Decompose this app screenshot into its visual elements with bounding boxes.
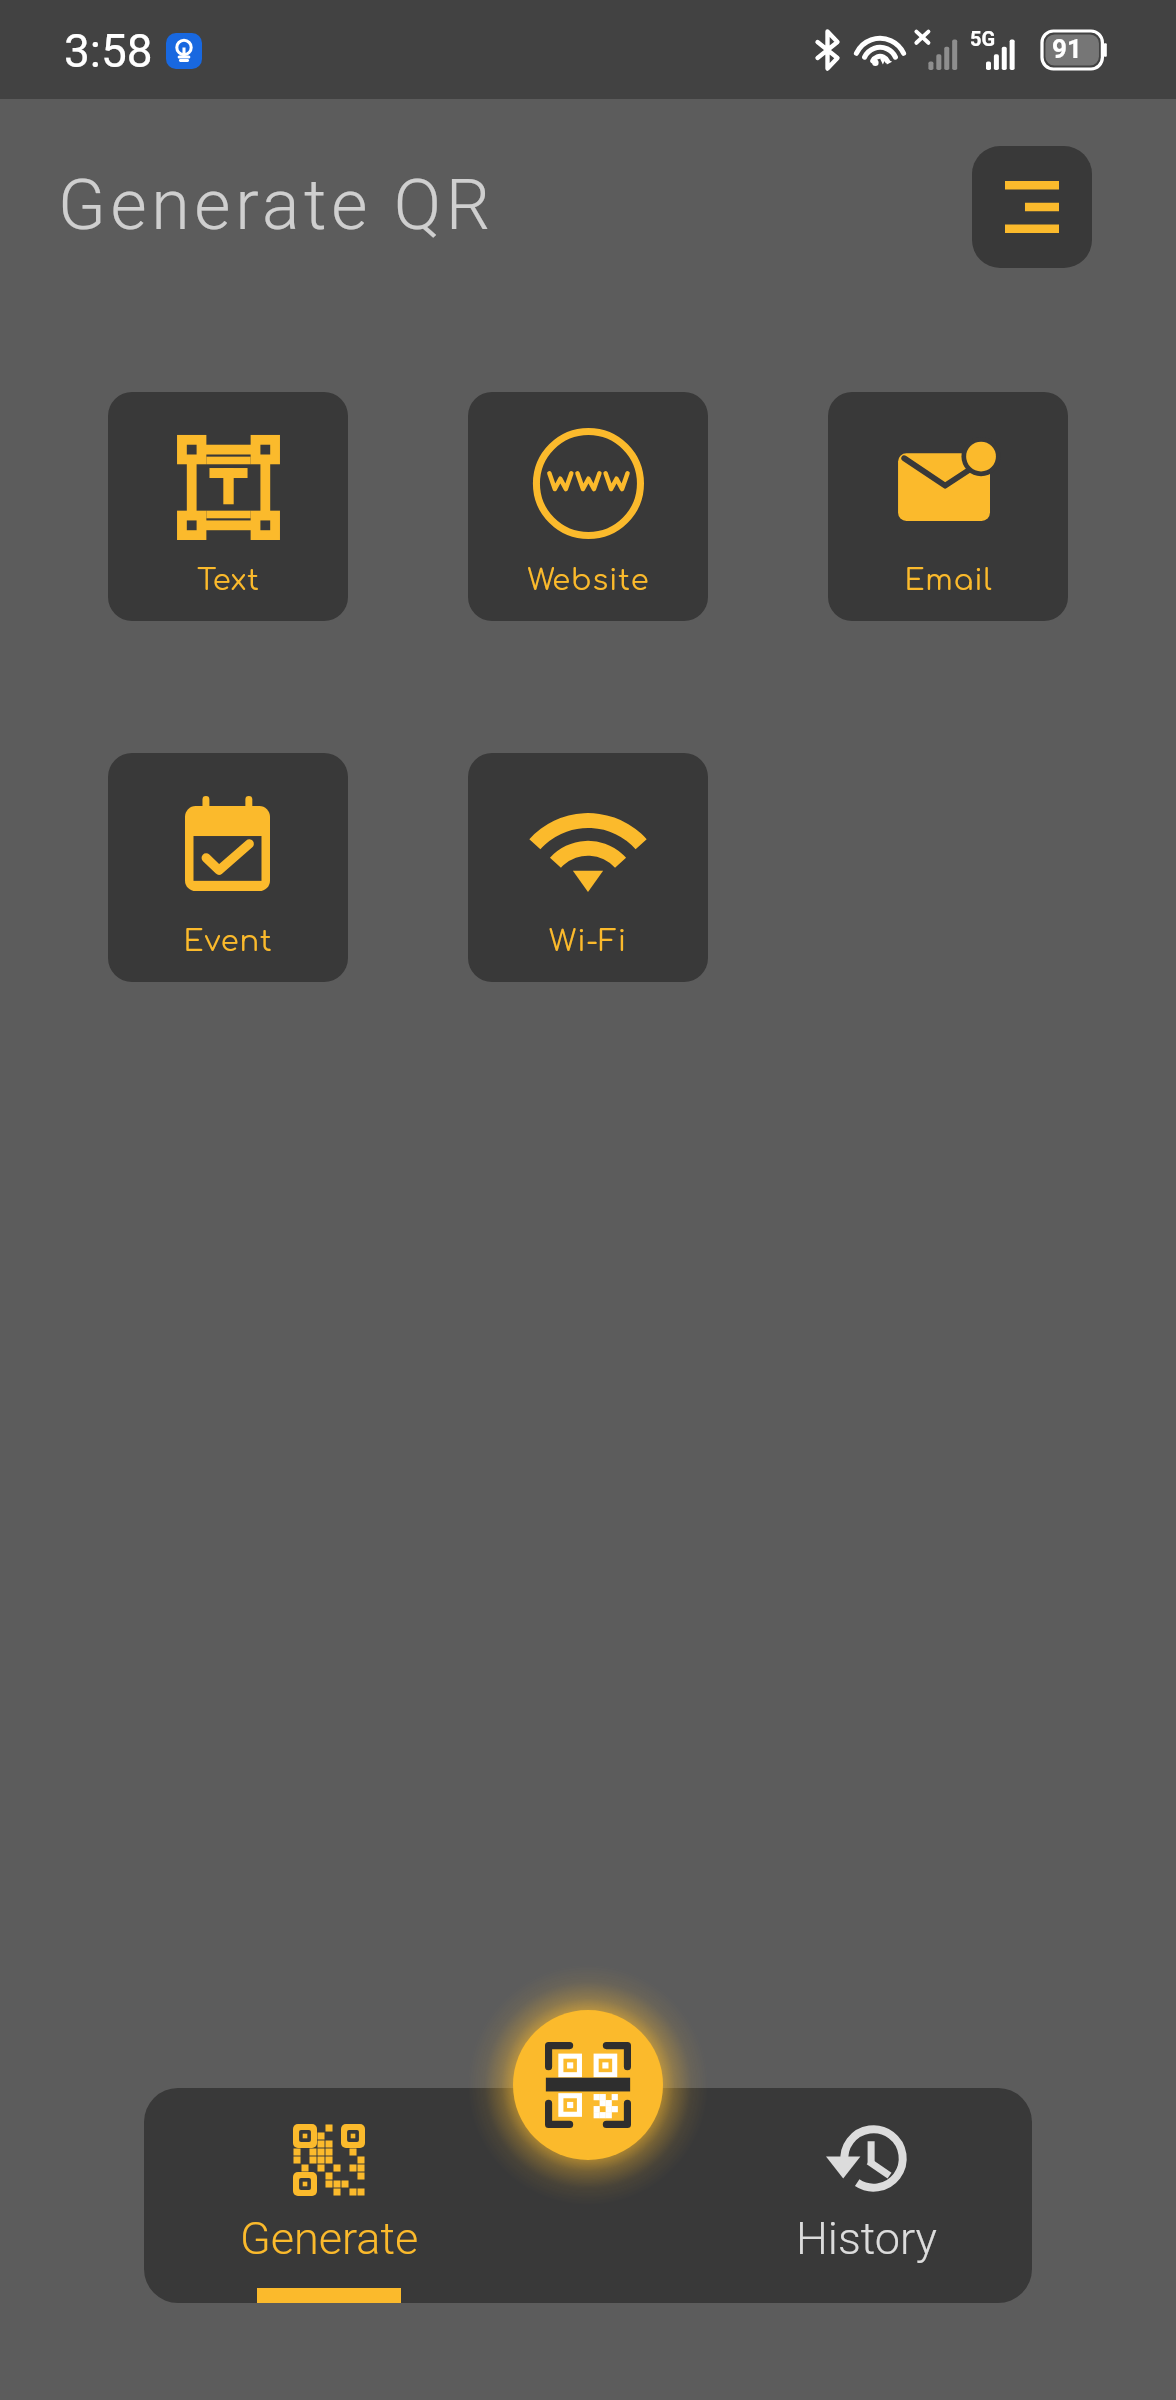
staticText: Event (183, 925, 273, 957)
button[interactable]: Scan QR code (513, 2010, 663, 2160)
staticText: History (796, 2212, 937, 2265)
staticText: 91 (1052, 34, 1082, 64)
button[interactable]: Website (468, 392, 708, 621)
button[interactable]: Event (108, 753, 348, 982)
staticText: Generate QR (58, 164, 495, 246)
staticText: 5G (970, 27, 996, 50)
staticText: Email (904, 564, 993, 596)
staticText: 3:58 (64, 24, 153, 78)
button[interactable]: Text (108, 392, 348, 621)
staticText: Text (197, 564, 260, 596)
button[interactable]: History (706, 2088, 1026, 2303)
staticText: Website (527, 564, 650, 596)
staticText: Wi-Fi (549, 925, 627, 957)
button[interactable]: Menu (972, 146, 1092, 268)
button[interactable]: Wi-Fi (468, 753, 708, 982)
staticText: Generate (240, 2212, 419, 2265)
button[interactable]: Email (828, 392, 1068, 621)
button[interactable]: Generate (169, 2088, 489, 2303)
